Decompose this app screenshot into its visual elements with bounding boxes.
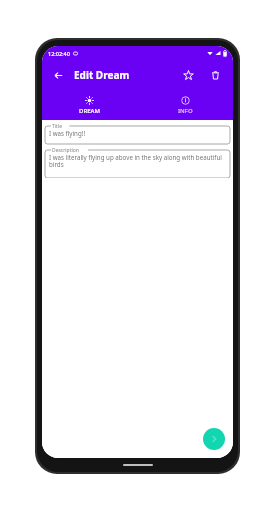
button[interactable]: DREAM	[42, 90, 137, 120]
button[interactable]: INFO	[137, 90, 233, 120]
button[interactable]: Delete	[204, 64, 226, 86]
button[interactable]: Favorite	[177, 64, 199, 86]
staticText: I was flying!!	[49, 129, 86, 137]
staticText: I was literally flying up above in the s…	[49, 153, 226, 169]
staticText: DREAM	[79, 107, 100, 115]
button[interactable]: I was literally flying up above in the s…	[45, 150, 230, 178]
staticText: Title	[52, 123, 62, 130]
button[interactable]: Back	[47, 64, 69, 86]
staticText: 12:02:40	[48, 50, 70, 57]
staticText: Description	[52, 147, 79, 154]
button[interactable]: Save dream	[203, 428, 225, 450]
button[interactable]: I was flying!!	[45, 126, 230, 144]
staticText: INFO	[178, 107, 193, 115]
staticText: Edit Dream	[74, 68, 130, 82]
